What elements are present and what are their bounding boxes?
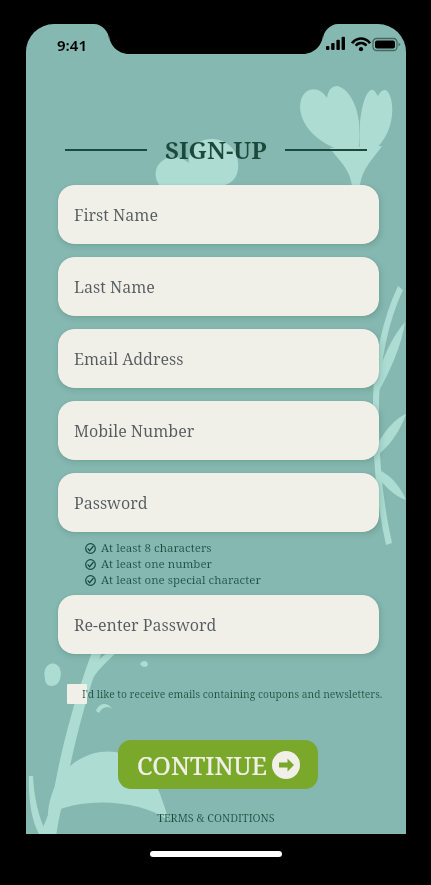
staticText: 9:41 <box>57 35 87 55</box>
button[interactable]: Password <box>58 473 379 532</box>
button[interactable]: Re-enter Password <box>58 595 379 654</box>
staticText: At least 8 characters <box>101 540 212 556</box>
staticText: Last Name <box>74 276 155 298</box>
staticText: Mobile Number <box>74 420 195 442</box>
staticText: Password <box>74 492 148 514</box>
staticText: SIGN-UP <box>165 133 267 166</box>
staticText: I'd like to receive emails containing co… <box>82 687 383 701</box>
staticText: First Name <box>74 204 159 226</box>
staticText: At least one number <box>101 556 212 572</box>
button[interactable] <box>67 684 87 704</box>
button[interactable]: First Name <box>58 185 379 244</box>
staticText: TERMS & CONDITIONS <box>26 810 406 825</box>
staticText: At least one special character <box>101 572 261 588</box>
button[interactable]: Mobile Number <box>58 401 379 460</box>
button[interactable]: Last Name <box>58 257 379 316</box>
staticText: Email Address <box>74 348 184 370</box>
button[interactable]: Email Address <box>58 329 379 388</box>
staticText: CONTINUE <box>137 748 268 782</box>
staticText: Re-enter Password <box>74 614 217 636</box>
button[interactable]: CONTINUE <box>118 740 318 789</box>
